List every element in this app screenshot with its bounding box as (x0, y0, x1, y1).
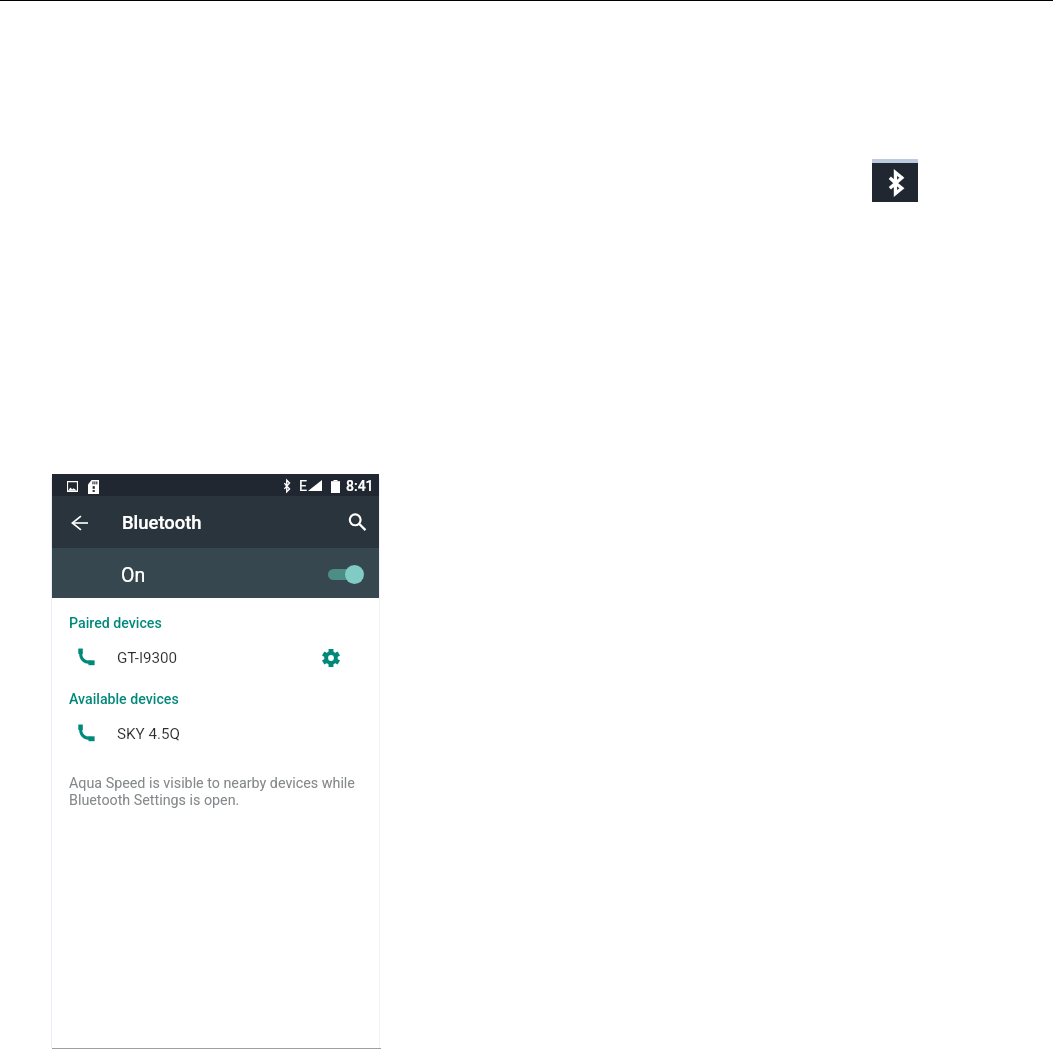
button[interactable]: Search (339, 504, 375, 540)
staticText: GT-I9300 (117, 649, 178, 667)
button[interactable]: Turn Bluetooth off (316, 559, 368, 589)
button[interactable]: Device settings (314, 641, 347, 674)
button[interactable]: Back (62, 505, 98, 541)
staticText: E (299, 478, 307, 494)
staticText: SKY 4.5Q (117, 725, 180, 743)
staticText: On (121, 564, 146, 587)
staticText: Bluetooth (122, 512, 202, 534)
staticText: 8:41 (346, 478, 374, 494)
staticText: Aqua Speed is visible to nearby devices … (69, 775, 355, 809)
button[interactable]: SKY 4.5Q (52, 719, 379, 752)
button[interactable]: Bluetooth (872, 159, 918, 202)
staticText: Available devices (69, 691, 179, 708)
staticText: Paired devices (69, 615, 162, 632)
button[interactable] (52, 548, 379, 598)
button[interactable]: GT-I9300 (52, 643, 379, 676)
